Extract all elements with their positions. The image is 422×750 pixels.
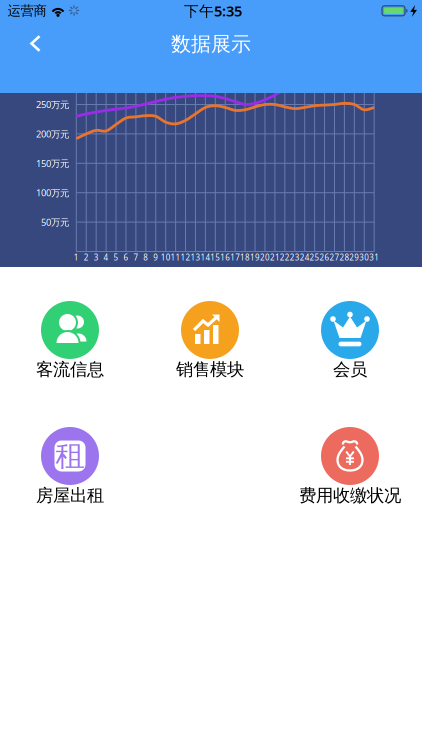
staticText: 250万元 — [36, 98, 69, 111]
staticText: 数据展示 — [171, 32, 251, 56]
staticText: 费用收缴状况 — [299, 485, 401, 506]
staticText: 30 — [359, 252, 369, 263]
staticText: 1 — [74, 252, 79, 263]
staticText: 25 — [310, 252, 320, 263]
staticText: 19 — [250, 252, 260, 263]
staticText: 26 — [320, 252, 330, 263]
staticText: 16 — [220, 252, 230, 263]
staticText: 11 — [171, 252, 181, 263]
staticText: 12 — [180, 252, 190, 263]
button[interactable]: 客流信息 — [0, 300, 140, 384]
staticText: 27 — [329, 252, 339, 263]
staticText: 31 — [369, 252, 379, 263]
staticText: 24 — [300, 252, 310, 263]
button[interactable]: 租 — [0, 426, 140, 510]
staticText: 18 — [240, 252, 250, 263]
staticText: 运营商 — [7, 3, 46, 19]
staticText: 会员 — [333, 359, 367, 380]
staticText: 150万元 — [36, 157, 69, 169]
staticText: 100万元 — [36, 186, 69, 199]
button[interactable]: 销售模块 — [140, 300, 280, 384]
staticText: 客流信息 — [36, 359, 104, 380]
staticText: 21 — [270, 252, 280, 263]
staticText: 20 — [260, 252, 270, 263]
staticText: 房屋出租 — [36, 485, 104, 506]
staticText: 29 — [349, 252, 359, 263]
staticText: 17 — [230, 252, 240, 263]
staticText: 5 — [113, 252, 118, 263]
button[interactable]: 会员 — [280, 300, 420, 384]
staticText: 2 — [84, 252, 89, 263]
staticText: 7 — [133, 252, 138, 263]
staticText: 15 — [210, 252, 220, 263]
staticText: 4 — [104, 252, 109, 263]
staticText: 销售模块 — [176, 359, 244, 380]
staticText: 23 — [290, 252, 300, 263]
staticText: 6 — [123, 252, 128, 263]
staticText: 8 — [143, 252, 148, 263]
staticText: 22 — [280, 252, 290, 263]
staticText: 14 — [200, 252, 210, 263]
staticText: 10 — [161, 252, 171, 263]
staticText: 200万元 — [36, 128, 69, 140]
staticText: 28 — [339, 252, 349, 263]
button[interactable]: Back — [30, 35, 41, 52]
staticText: 3 — [94, 252, 99, 263]
staticText: 50万元 — [41, 216, 69, 228]
staticText: 租 — [55, 438, 84, 474]
staticText: 9 — [153, 252, 158, 263]
staticText: 下午5:35 — [184, 1, 242, 21]
staticText: 13 — [190, 252, 200, 263]
button[interactable]: 费用收缴状况 — [280, 426, 420, 510]
